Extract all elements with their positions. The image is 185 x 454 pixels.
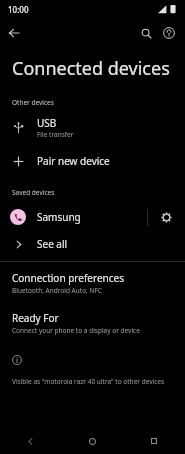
staticText: Bluetooth, Android Auto, NFC xyxy=(12,286,102,295)
staticText: Connection preferences xyxy=(12,271,124,285)
staticText: Connected devices xyxy=(12,56,170,81)
staticText: 10:00 xyxy=(8,4,29,15)
button[interactable]: Pair new device xyxy=(0,148,185,174)
button[interactable]: Help xyxy=(158,22,180,44)
button[interactable]: Home xyxy=(61,428,123,454)
staticText: File transfer xyxy=(37,130,74,139)
button[interactable]: Back xyxy=(0,428,61,454)
staticText: USB xyxy=(37,116,57,130)
staticText: Saved devices xyxy=(12,188,55,197)
staticText: Ready For xyxy=(12,311,59,325)
button[interactable]: See all xyxy=(0,232,185,256)
staticText: Other devices xyxy=(12,98,54,107)
button[interactable]: Samsung device settings xyxy=(148,202,185,232)
staticText: Samsung xyxy=(37,210,81,224)
button[interactable]: Back xyxy=(3,22,25,44)
button[interactable]: Recent apps xyxy=(123,428,185,454)
button[interactable]: Connection preferences xyxy=(0,267,185,299)
staticText: Connect your phone to a display or devic… xyxy=(12,326,140,335)
staticText: Pair new device xyxy=(37,154,110,168)
button[interactable]: USB xyxy=(0,112,185,142)
button[interactable]: Ready For xyxy=(0,309,185,337)
staticText: Visible as "motorola razr 40 ultra" to o… xyxy=(12,377,165,386)
button[interactable]: Samsung xyxy=(0,202,147,232)
staticText: See all xyxy=(37,237,68,251)
button[interactable]: Search xyxy=(135,22,157,44)
